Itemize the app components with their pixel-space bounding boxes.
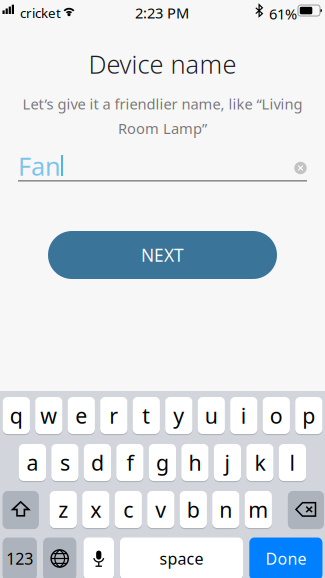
staticText: m [248, 495, 268, 524]
button[interactable]: f [116, 444, 143, 482]
staticText: q [10, 401, 23, 430]
staticText: p [302, 401, 315, 430]
button[interactable]: NEXT [48, 231, 277, 279]
staticText: Room Lamp” [118, 118, 207, 138]
staticText: space [159, 548, 203, 569]
button[interactable]: j [214, 444, 241, 482]
button[interactable]: d [84, 444, 111, 482]
staticText: 123 [6, 548, 33, 569]
button[interactable]: p [295, 397, 322, 435]
staticText: 2:23 PM [135, 3, 189, 22]
staticText: f [126, 448, 133, 477]
button[interactable]: q [3, 397, 30, 435]
button[interactable]: b [180, 491, 207, 529]
button[interactable]: Clear text [287, 155, 313, 181]
button[interactable]: m [245, 491, 272, 529]
staticText: h [188, 448, 201, 477]
staticText: n [219, 495, 232, 524]
staticText: u [205, 401, 218, 430]
staticText: Device name [88, 47, 236, 81]
button[interactable]: Dictate [83, 537, 114, 578]
staticText: c [123, 495, 133, 524]
button[interactable]: r [100, 397, 127, 435]
button[interactable]: a [19, 444, 46, 482]
staticText: j [224, 448, 230, 477]
staticText: t [142, 401, 150, 430]
button[interactable]: s [51, 444, 78, 482]
button[interactable]: w [35, 397, 62, 435]
staticText: e [75, 401, 87, 430]
button[interactable]: u [198, 397, 225, 435]
button[interactable]: o [263, 397, 290, 435]
staticText: k [254, 448, 265, 477]
button[interactable]: Done [249, 537, 322, 578]
staticText: NEXT [141, 243, 184, 266]
staticText: Fan [18, 149, 61, 183]
button[interactable]: v [147, 491, 174, 529]
button[interactable]: Delete [288, 491, 324, 529]
button[interactable]: Next keyboard [43, 537, 76, 578]
staticText: r [109, 401, 118, 430]
staticText: z [58, 495, 68, 524]
staticText: i [241, 401, 247, 430]
button[interactable]: c [115, 491, 142, 529]
staticText: o [270, 401, 283, 430]
staticText: a [26, 448, 38, 477]
staticText: v [155, 495, 166, 524]
button[interactable]: l [279, 444, 306, 482]
button[interactable]: e [68, 397, 95, 435]
button[interactable]: t [133, 397, 160, 435]
staticText: g [156, 448, 169, 477]
staticText: s [60, 448, 70, 477]
button[interactable]: n [212, 491, 239, 529]
staticText: w [40, 401, 57, 430]
button[interactable]: z [50, 491, 77, 529]
staticText: y [173, 401, 184, 430]
button[interactable]: Shift [3, 491, 39, 529]
button[interactable]: y [165, 397, 192, 435]
button[interactable]: space [120, 537, 243, 578]
button[interactable]: x [82, 491, 109, 529]
staticText: Let’s give it a friendlier name, like “L… [22, 94, 302, 113]
staticText: cricket [20, 4, 61, 22]
button[interactable]: h [181, 444, 208, 482]
staticText: x [90, 495, 101, 524]
button[interactable]: k [246, 444, 273, 482]
button[interactable]: i [230, 397, 257, 435]
staticText: b [187, 495, 200, 524]
button[interactable]: 123 [3, 537, 37, 578]
staticText: Done [265, 548, 306, 569]
staticText: l [289, 448, 295, 477]
staticText: 61% [269, 4, 297, 23]
button[interactable]: g [149, 444, 176, 482]
staticText: d [91, 448, 104, 477]
